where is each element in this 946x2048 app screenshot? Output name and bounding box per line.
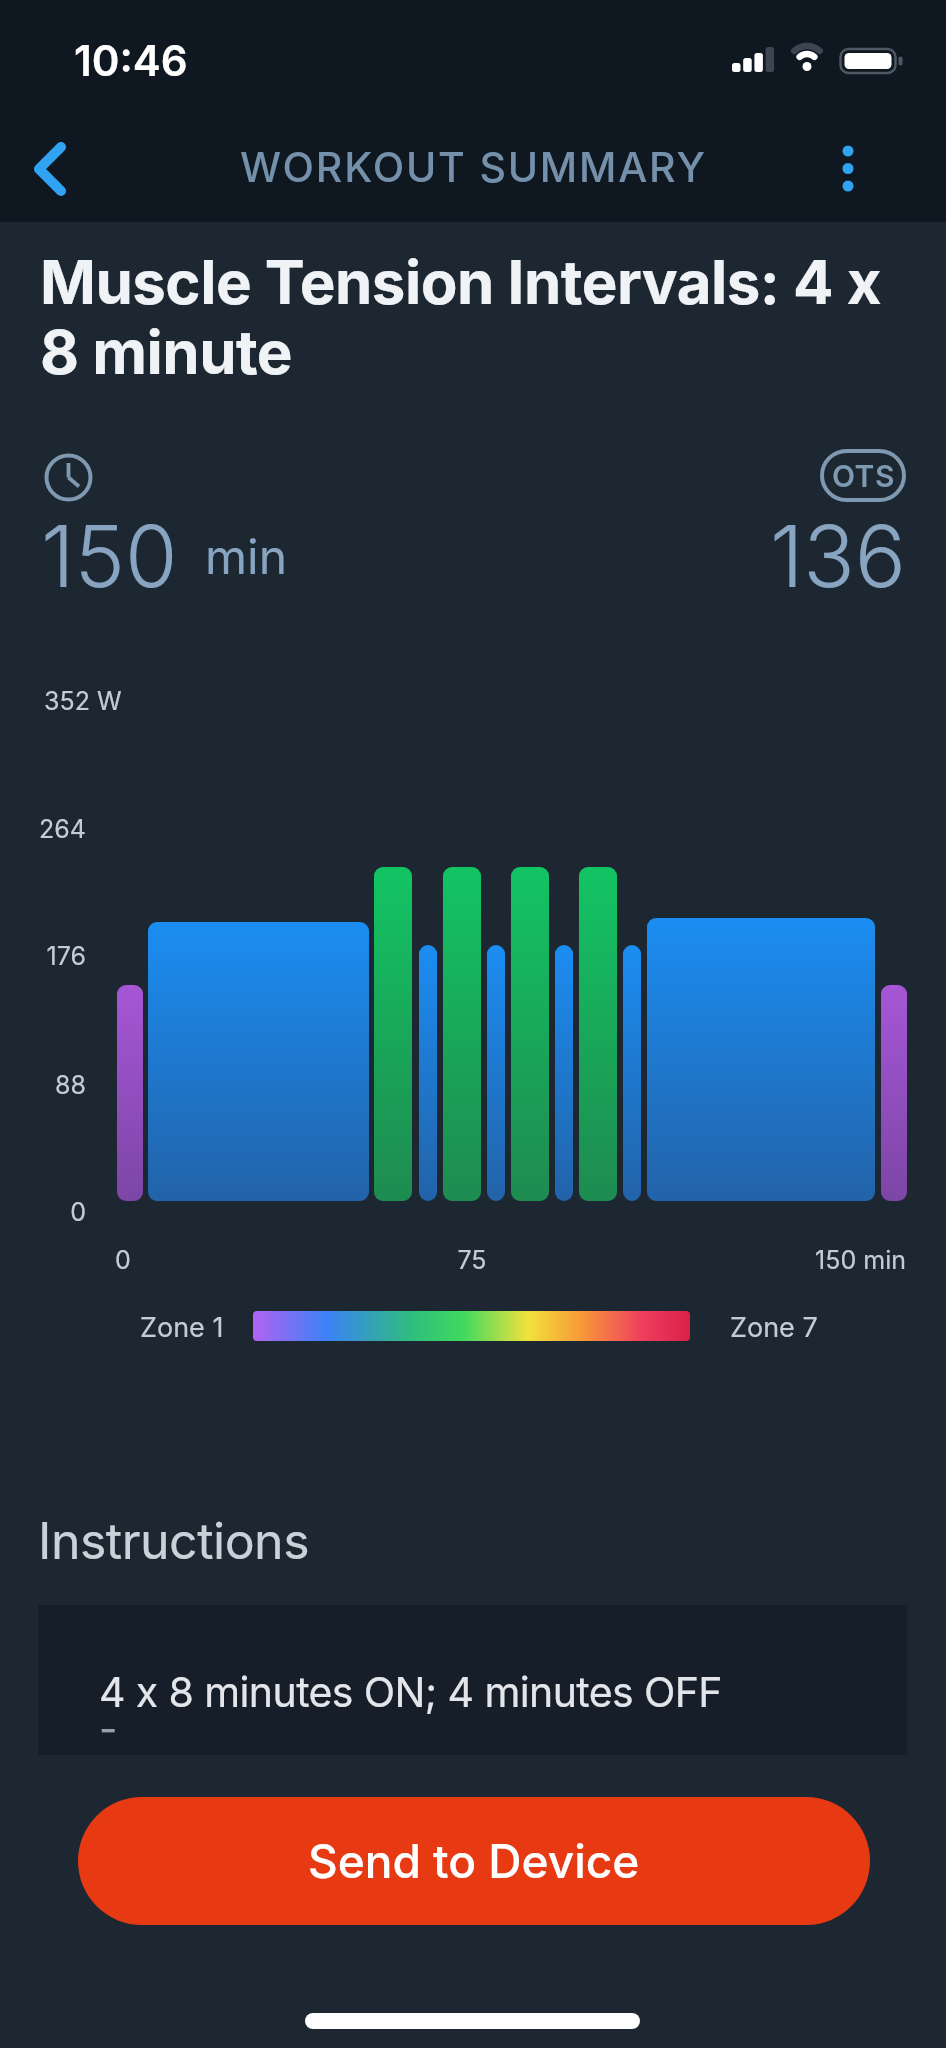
staticText: 10:46 [74,35,188,86]
staticText: 150 [41,505,178,608]
staticText: min [205,527,288,585]
staticText: - [99,1704,118,1752]
staticText: 88 [0,1070,86,1100]
button[interactable] [812,132,884,208]
staticText: 0 [0,1197,86,1227]
staticText: 0 [110,1245,136,1275]
staticText: 264 [0,814,86,844]
staticText: 352 W [44,686,122,716]
staticText: Instructions [38,1511,310,1571]
staticText: Send to Device [308,1833,640,1889]
staticText: OTS [832,458,895,494]
staticText: 75 [452,1245,492,1275]
staticText: 150 min [760,1245,906,1275]
staticText: WORKOUT SUMMARY [240,142,707,192]
staticText: 4 х 8 minutes ON; 4 minutes OFF [99,1667,722,1717]
staticText: Zone 7 [730,1311,818,1344]
button[interactable] [14,130,88,208]
staticText: Zone 1 [140,1311,224,1344]
staticText: 136 [700,505,906,608]
staticText: 176 [0,941,86,971]
staticText: Muscle Tension Intervals: 4 х 8 minute [40,246,920,389]
button[interactable]: Send to Device [78,1797,870,1925]
